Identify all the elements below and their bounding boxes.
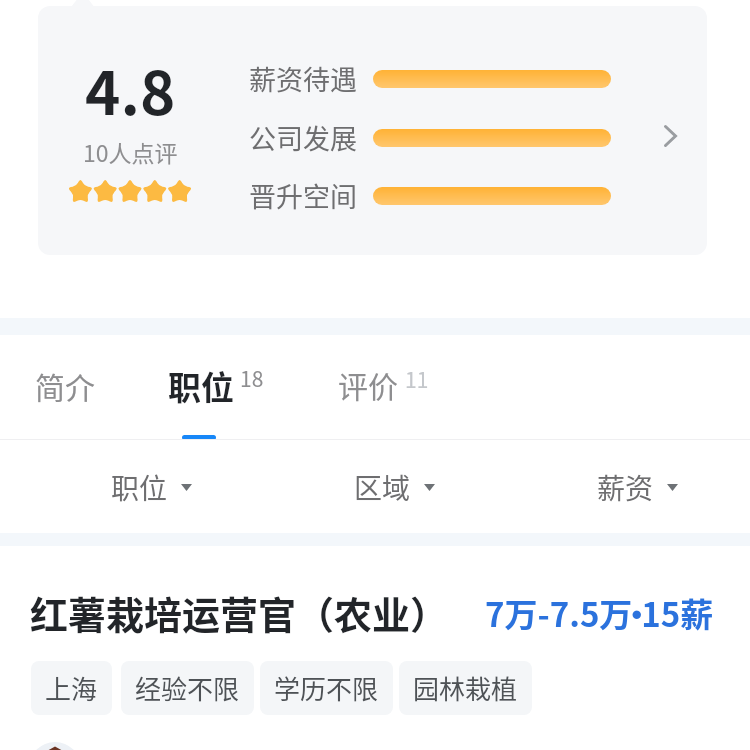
staticText: 10人点评: [83, 135, 178, 168]
button[interactable]: 薪资: [527, 442, 747, 533]
staticText: 职位: [111, 467, 168, 508]
staticText: 公司发展: [249, 118, 357, 157]
staticText: 薪资: [597, 467, 654, 508]
staticText: 7万-7.5万·15薪: [485, 589, 714, 637]
button[interactable]: 评价: [320, 345, 450, 430]
button[interactable]: 查看评价详情: [631, 94, 707, 178]
button[interactable]: 简介: [10, 345, 120, 430]
button[interactable]: 职位: [41, 442, 261, 533]
staticText: 学历不限: [274, 669, 379, 707]
staticText: 评价: [338, 363, 398, 406]
staticText: 晋升空间: [249, 176, 357, 215]
staticText: 简介: [35, 364, 95, 407]
button[interactable]: 4.8: [38, 6, 707, 255]
staticText: 红薯栽培运营官（农业）: [30, 585, 449, 640]
button[interactable]: 区域: [284, 442, 504, 533]
staticText: 上海: [45, 669, 98, 707]
staticText: 4.8: [85, 45, 176, 132]
staticText: 职位: [168, 362, 234, 410]
staticText: 区域: [354, 467, 411, 508]
staticText: 园林栽植: [413, 669, 518, 707]
staticText: 薪资待遇: [249, 59, 357, 98]
button[interactable]: 红薯栽培运营官（农业）: [0, 546, 750, 750]
staticText: 经验不限: [135, 669, 240, 707]
staticText: 18: [240, 363, 264, 393]
staticText: 11: [405, 364, 429, 394]
button[interactable]: 职位: [145, 345, 285, 440]
